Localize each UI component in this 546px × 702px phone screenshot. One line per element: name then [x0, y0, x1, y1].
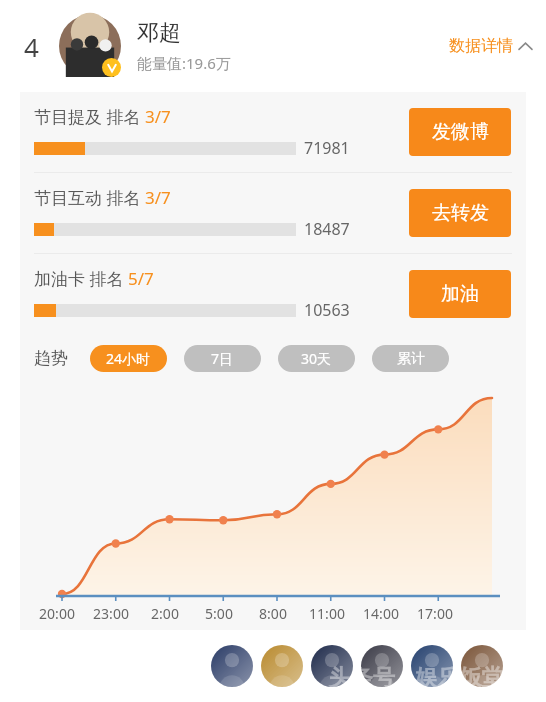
staticText: 14:00	[354, 604, 408, 623]
staticText: 18487	[304, 218, 350, 240]
button[interactable]: 累计	[372, 345, 449, 372]
staticText: 能量值:19.6万	[137, 53, 231, 73]
staticText: 7日	[211, 349, 234, 368]
staticText: 加油卡 排名	[34, 267, 128, 290]
button[interactable]: Fan avatar	[461, 645, 503, 687]
staticText: 数据详情	[449, 36, 513, 56]
staticText: 4	[24, 29, 39, 64]
staticText: 71981	[304, 137, 350, 159]
button[interactable]: 24小时	[90, 345, 167, 372]
button[interactable]: 发微博	[409, 108, 511, 156]
staticText: 累计	[397, 350, 425, 368]
staticText: 节目提及 排名	[34, 105, 145, 128]
staticText: 17:00	[408, 604, 462, 623]
button[interactable]: 7日	[184, 345, 261, 372]
staticText: 节目互动 排名	[34, 186, 145, 209]
staticText: 10563	[304, 299, 350, 321]
staticText: 发微博	[432, 120, 489, 144]
button[interactable]: 数据详情	[449, 36, 532, 56]
button[interactable]: Fan avatar	[261, 645, 303, 687]
button[interactable]: Fan avatar	[211, 645, 253, 687]
button[interactable]: Fan avatar	[411, 645, 453, 687]
staticText: 20:00	[30, 604, 84, 623]
staticText: 2:00	[138, 604, 192, 623]
button[interactable]: 30天	[278, 345, 355, 372]
button[interactable]: Fan avatar	[361, 645, 403, 687]
staticText: 邓超	[137, 19, 181, 47]
staticText: 趋势	[34, 348, 68, 369]
staticText: 5:00	[192, 604, 246, 623]
staticText: 24小时	[106, 349, 151, 368]
button[interactable]: 加油	[409, 270, 511, 318]
button[interactable]: Fan avatar	[311, 645, 353, 687]
staticText: 8:00	[246, 604, 300, 623]
staticText: 3/7	[145, 105, 171, 128]
staticText: 头条号 / 娱乐饭堂	[329, 661, 504, 691]
button[interactable]: 去转发	[409, 189, 511, 237]
staticText: 加油	[441, 282, 479, 306]
staticText: 11:00	[300, 604, 354, 623]
staticText: 去转发	[432, 201, 489, 225]
staticText: 3/7	[145, 186, 171, 209]
staticText: 5/7	[128, 267, 154, 290]
staticText: 23:00	[84, 604, 138, 623]
staticText: 30天	[301, 349, 332, 368]
